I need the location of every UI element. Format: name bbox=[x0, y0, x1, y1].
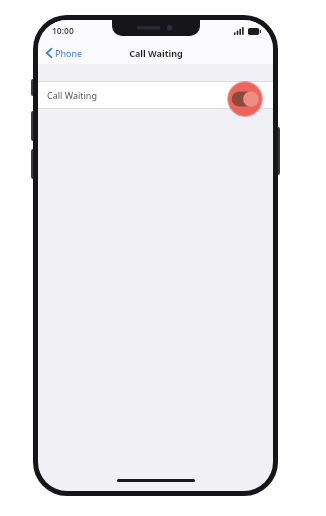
staticText: 10:00 bbox=[52, 25, 74, 37]
staticText: Phone bbox=[55, 47, 83, 59]
staticText: Call Waiting bbox=[129, 47, 183, 59]
staticText: Call Waiting bbox=[47, 89, 97, 101]
button[interactable]: Phone bbox=[38, 44, 89, 62]
button[interactable]: Call Waiting bbox=[38, 81, 273, 109]
button[interactable]: Call Waiting toggle, on bbox=[227, 81, 263, 117]
